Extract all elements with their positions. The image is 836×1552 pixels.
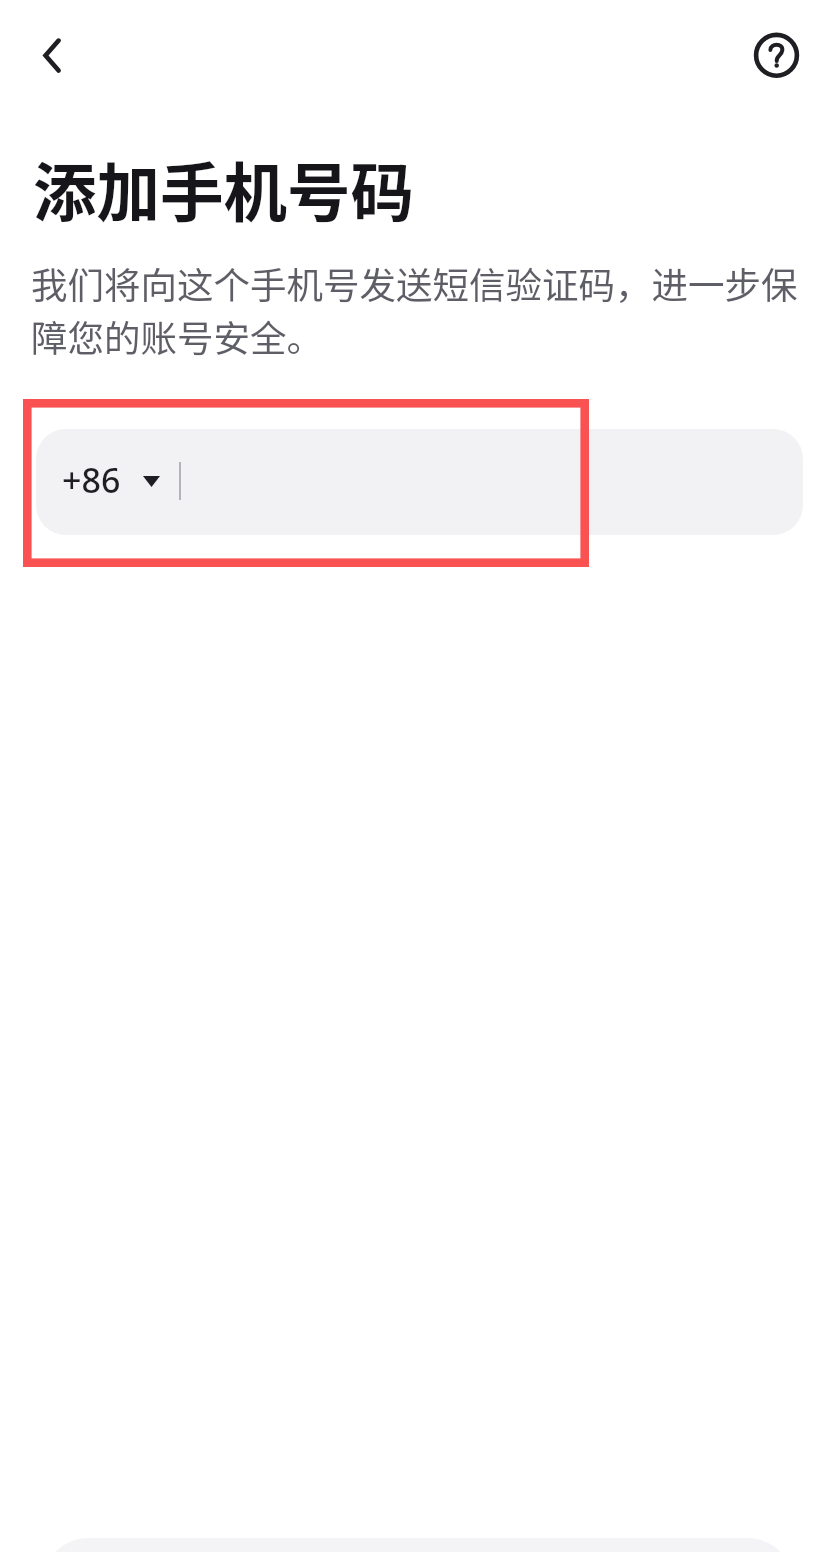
button[interactable]: Back — [8, 12, 96, 100]
button[interactable]: Help — [732, 11, 821, 100]
staticText: 我们将向这个手机号发送短信验证码，进一步保障您的账号安全。 — [31, 257, 821, 363]
staticText: 添加手机号码 — [33, 142, 414, 234]
staticText: +86 — [62, 457, 121, 503]
button[interactable]: +86 — [36, 429, 803, 535]
